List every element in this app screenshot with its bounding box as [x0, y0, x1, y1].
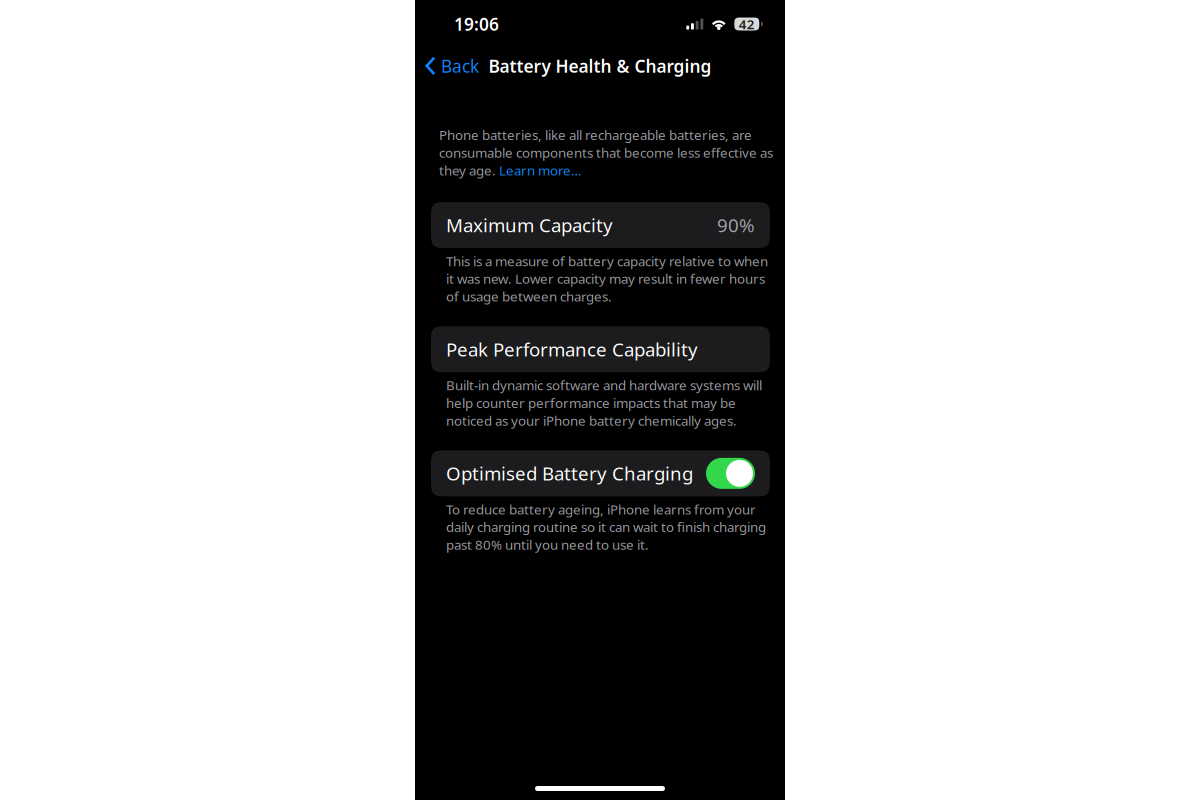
staticText: 90% — [717, 213, 755, 237]
staticText: Peak Performance Capability — [446, 337, 698, 362]
button[interactable]: Learn more… — [499, 161, 582, 179]
staticText: Built-in dynamic software and hardware s… — [446, 376, 762, 429]
staticText: Phone batteries, like all rechargeable b… — [439, 126, 773, 161]
button[interactable]: Back — [415, 48, 488, 84]
staticText: Maximum Capacity — [446, 213, 613, 237]
staticText: Learn more… — [499, 161, 582, 179]
staticText: 19:06 — [454, 12, 499, 35]
staticText: Battery Health & Charging — [488, 54, 711, 77]
staticText: This is a measure of battery capacity re… — [446, 252, 768, 305]
button[interactable]: Optimised Battery Charging — [706, 458, 755, 489]
staticText: Back — [441, 54, 479, 77]
button[interactable]: Peak Performance Capability — [431, 326, 770, 372]
staticText: To reduce battery ageing, iPhone learns … — [446, 500, 766, 553]
staticText: they age. — [439, 161, 499, 179]
staticText: Optimised Battery Charging — [446, 461, 693, 486]
staticText: 42 — [739, 15, 755, 33]
